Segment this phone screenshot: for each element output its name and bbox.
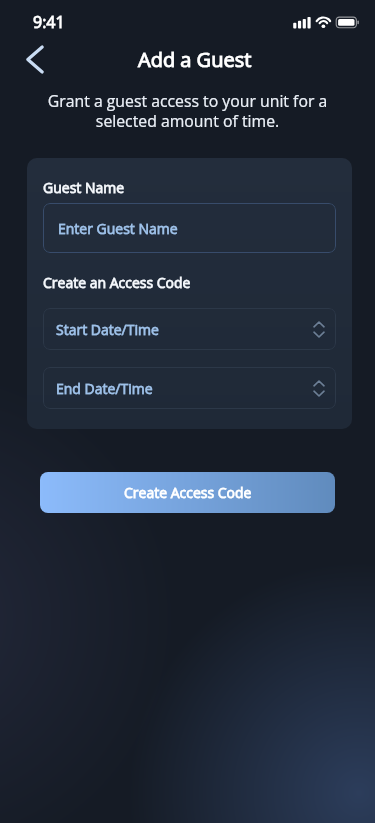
staticText: Create an Access Code — [43, 273, 191, 292]
staticText: Grant a guest access to your unit for a … — [44, 90, 331, 131]
button[interactable]: Back — [17, 41, 53, 77]
button[interactable]: Create Access Code — [40, 472, 335, 513]
staticText: Enter Guest Name — [58, 219, 178, 238]
staticText: Create Access Code — [124, 483, 252, 502]
staticText: Guest Name — [43, 178, 125, 197]
button[interactable]: Enter Guest Name — [43, 203, 336, 253]
button[interactable]: End Date/Time — [43, 367, 336, 409]
staticText: End Date/Time — [56, 379, 153, 398]
staticText: Start Date/Time — [56, 320, 159, 339]
button[interactable]: Start Date/Time — [43, 308, 336, 350]
staticText: 9:41 — [33, 11, 65, 33]
staticText: Add a Guest — [138, 46, 252, 73]
